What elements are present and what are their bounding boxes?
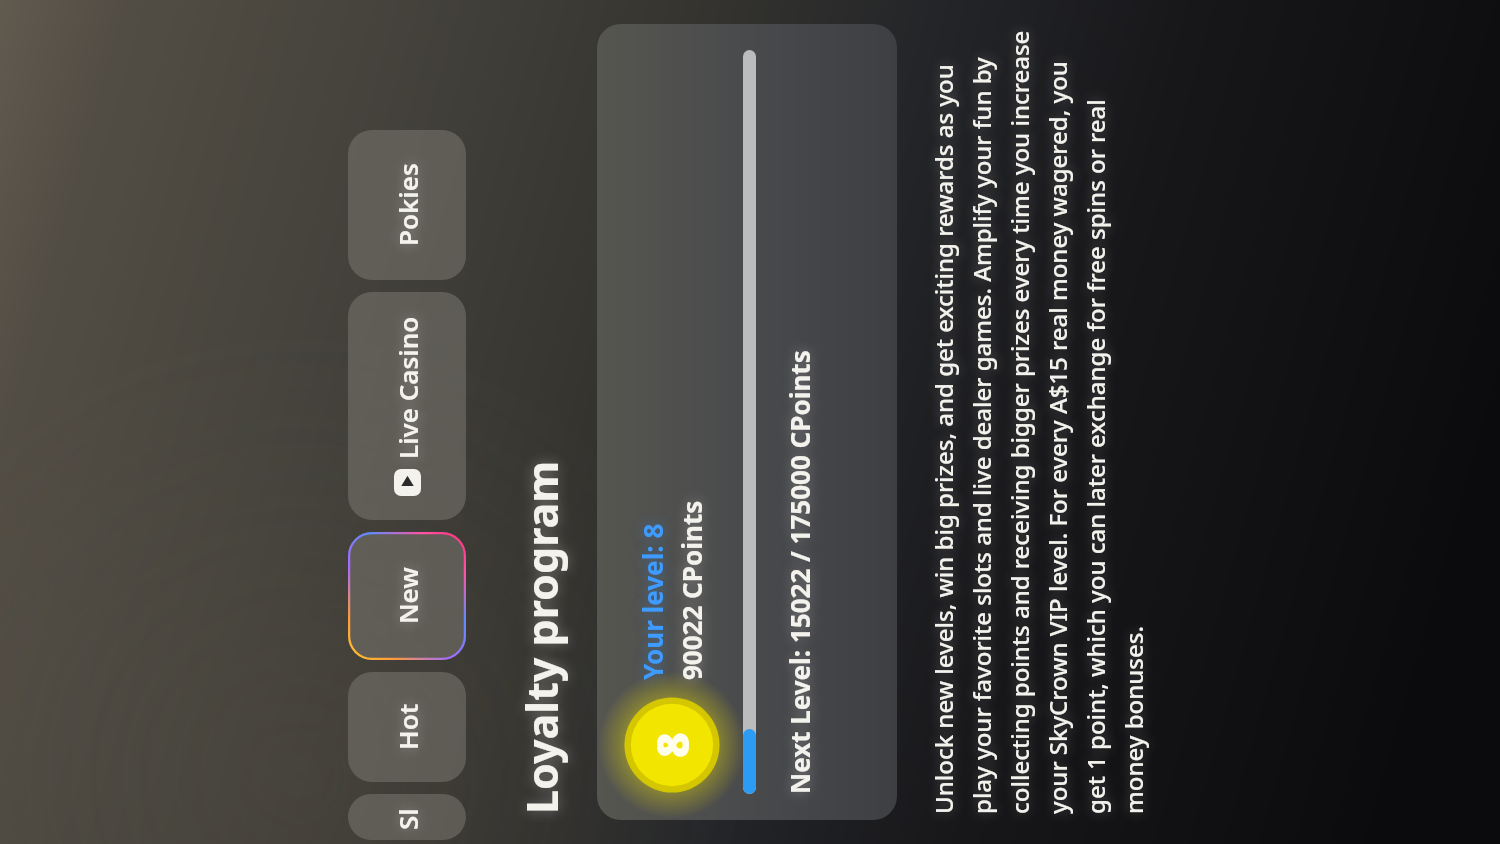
- staticText: Loyalty program: [512, 460, 571, 814]
- staticText: Pokies: [390, 163, 425, 246]
- staticText: 90022 CPoints: [674, 500, 709, 680]
- staticText: Hot: [390, 703, 425, 750]
- button[interactable]: Slots: [348, 794, 466, 840]
- staticText: 8: [642, 732, 702, 758]
- button[interactable]: Pokies: [348, 130, 466, 280]
- staticText: Your level: 8: [635, 523, 670, 680]
- button[interactable]: New: [348, 532, 466, 660]
- staticText: Unlock new levels, win big prizes, and g…: [927, 30, 1150, 814]
- staticText: Live Casino: [390, 316, 425, 459]
- staticText: New: [390, 567, 425, 624]
- button[interactable]: Hot: [348, 672, 466, 782]
- staticText: Slots: [390, 804, 425, 830]
- button[interactable]: 8: [597, 24, 897, 820]
- staticText: Next Level: 15022 / 175000 CPoints: [782, 350, 817, 794]
- button[interactable]: Live Casino: [348, 292, 466, 520]
